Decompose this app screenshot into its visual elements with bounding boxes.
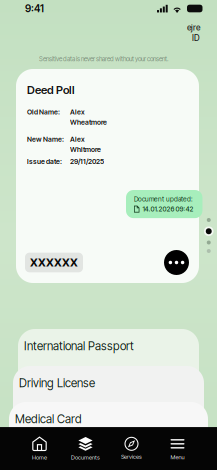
staticText: Home: [32, 454, 47, 461]
staticText: ID: [192, 33, 200, 43]
button[interactable]: Menu: [154, 437, 200, 461]
button[interactable]: Driving License: [13, 366, 204, 430]
staticText: Old Name:: [27, 108, 60, 116]
staticText: Wheatmore: [70, 118, 107, 126]
staticText: ejre: [187, 22, 200, 32]
staticText: Deed Poll: [27, 83, 75, 97]
button[interactable]: Services: [108, 437, 154, 460]
staticText: Services: [121, 453, 142, 460]
staticText: Medical Card: [15, 412, 82, 426]
staticText: XXXXXX: [30, 256, 78, 269]
staticText: 9:41: [25, 2, 44, 15]
staticText: Documents: [71, 454, 100, 461]
staticText: 14.01.2026 09:42: [142, 205, 193, 213]
staticText: 29/11/2025: [70, 157, 104, 166]
staticText: Whitmore: [70, 145, 101, 154]
staticText: Menu: [170, 454, 184, 461]
staticText: Alex: [70, 135, 85, 143]
button[interactable]: Home: [16, 437, 62, 461]
staticText: Sensitive data is never shared without y…: [39, 55, 169, 63]
staticText: Alex: [70, 108, 85, 116]
staticText: Issue date:: [27, 157, 62, 166]
button[interactable]: Medical Card: [9, 402, 208, 466]
staticText: Document updated:: [134, 195, 193, 203]
staticText: Driving License: [19, 376, 95, 390]
button[interactable]: More actions: [164, 250, 189, 275]
staticText: International Passport: [24, 339, 134, 353]
button[interactable]: International Passport: [18, 329, 199, 393]
button[interactable]: Documents: [62, 437, 108, 461]
staticText: New Name:: [27, 135, 64, 143]
